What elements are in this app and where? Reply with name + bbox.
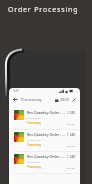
staticText: ₹ 240 bbox=[67, 111, 76, 115]
button[interactable]: Edit bbox=[70, 96, 77, 103]
staticText: Rev Quantity Order - 200ml bbox=[27, 154, 67, 159]
button[interactable]: Rev Quantity Order - 200ml bbox=[9, 152, 80, 173]
staticText: Processing bbox=[27, 121, 41, 125]
staticText: Rev Quantity Order - 200ml bbox=[27, 132, 67, 137]
staticText: 28/30 bbox=[60, 97, 70, 102]
staticText: #ORD-92817 bbox=[27, 116, 42, 119]
staticText: Processing bbox=[27, 165, 41, 169]
staticText: 9:41 bbox=[13, 89, 19, 93]
staticText: 28 Nov bbox=[67, 166, 76, 169]
staticText: ₹ 240 bbox=[67, 155, 76, 159]
staticText: #ORD-92817 bbox=[27, 138, 42, 141]
button[interactable]: Rev Quantity Order - 200ml bbox=[9, 108, 80, 129]
staticText: ₹ 240 bbox=[67, 133, 76, 137]
staticText: #ORD-92817 bbox=[27, 160, 42, 163]
staticText: 28 Nov bbox=[67, 122, 76, 125]
staticText: Processing bbox=[21, 97, 42, 102]
staticText: Order Processing bbox=[8, 5, 79, 15]
staticText: 28 Nov bbox=[67, 144, 76, 147]
staticText: Rev Quantity Order - 200ml bbox=[27, 110, 67, 115]
button[interactable]: Rev Quantity Order - 200ml bbox=[9, 130, 80, 151]
staticText: Processing bbox=[27, 143, 41, 147]
button[interactable]: Back bbox=[12, 96, 19, 103]
